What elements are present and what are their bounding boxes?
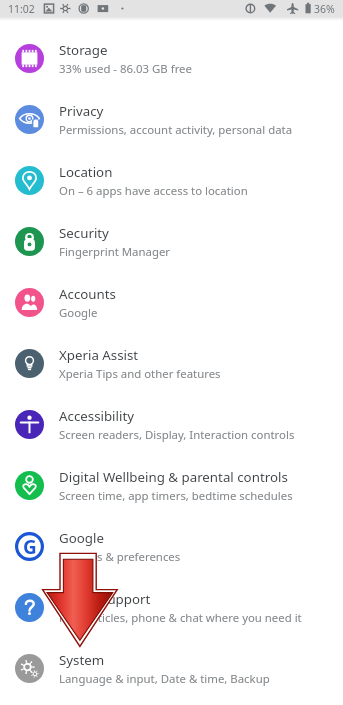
staticText: Accounts	[59, 285, 116, 303]
staticText: Screen readers, Display, Interaction con…	[59, 427, 295, 443]
staticText: Xperia Tips and other features	[59, 366, 221, 382]
staticText: Fingerprint Manager	[59, 244, 171, 260]
staticText: System	[59, 651, 105, 669]
button[interactable]: Privacy	[0, 89, 343, 150]
staticText: 11:02	[8, 2, 35, 16]
staticText: 36%	[314, 2, 335, 16]
staticText: Privacy	[59, 102, 104, 120]
button[interactable]: G	[0, 516, 343, 577]
staticText: 33% used - 86.03 GB free	[59, 61, 192, 77]
button[interactable]: Tips & support	[0, 577, 343, 638]
staticText: Services & preferences	[59, 549, 181, 565]
staticText: Language & input, Date & time, Backup	[59, 671, 270, 687]
button[interactable]: Digital Wellbeing & parental controls	[0, 455, 343, 516]
staticText: Digital Wellbeing & parental controls	[59, 468, 288, 486]
staticText: Tips & support	[59, 590, 151, 608]
staticText: Permissions, account activity, personal …	[59, 122, 293, 138]
staticText: Accessibility	[59, 407, 134, 425]
staticText: Xperia Assist	[59, 346, 139, 364]
staticText: Storage	[59, 41, 108, 59]
button[interactable]: Location	[0, 150, 343, 211]
button[interactable]: Accounts	[0, 272, 343, 333]
staticText: Screen time, app timers, bedtime schedul…	[59, 488, 293, 504]
button[interactable]: Xperia Assist	[0, 333, 343, 394]
button[interactable]: Storage	[0, 28, 343, 89]
button[interactable]: Accessibility	[0, 394, 343, 455]
staticText: Google	[59, 529, 104, 547]
staticText: Help articles, phone & chat where you ne…	[59, 610, 302, 626]
staticText: Location	[59, 163, 113, 181]
staticText: Security	[59, 224, 109, 242]
button[interactable]: Security	[0, 211, 343, 272]
staticText: On – 6 apps have access to location	[59, 183, 248, 199]
button[interactable]: System	[0, 638, 343, 699]
staticText: Google	[59, 305, 98, 321]
staticText: G	[23, 534, 37, 560]
